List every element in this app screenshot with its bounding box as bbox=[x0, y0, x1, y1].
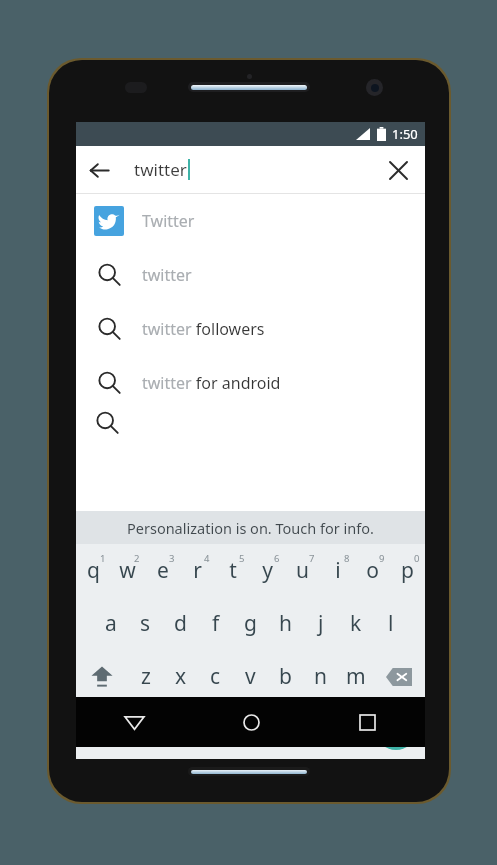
staticText: c bbox=[210, 662, 221, 691]
button[interactable]: c bbox=[198, 650, 233, 703]
staticText: b bbox=[279, 662, 292, 691]
staticText: n bbox=[314, 662, 327, 691]
staticText: 1 bbox=[100, 552, 106, 565]
button[interactable]: b bbox=[268, 650, 303, 703]
staticText: twitter bbox=[134, 158, 187, 181]
button[interactable]: f bbox=[198, 597, 233, 650]
staticText: twitter followers bbox=[142, 318, 265, 340]
staticText: x bbox=[175, 662, 187, 691]
button[interactable]: i bbox=[320, 544, 355, 597]
button[interactable]: Clear search bbox=[375, 147, 421, 193]
staticText: r bbox=[193, 556, 202, 585]
staticText: 1:50 bbox=[392, 125, 418, 143]
button[interactable]: , bbox=[128, 703, 164, 756]
staticText: a bbox=[105, 609, 117, 638]
staticText: h bbox=[279, 609, 292, 638]
button[interactable]: Home bbox=[193, 697, 309, 747]
button[interactable]: . bbox=[331, 703, 367, 756]
button[interactable]: Search bbox=[376, 710, 416, 750]
button[interactable]: Back bbox=[76, 147, 122, 193]
button[interactable]: twitter for android bbox=[76, 356, 425, 410]
staticText: w bbox=[119, 556, 136, 585]
button[interactable]: p bbox=[390, 544, 425, 597]
button[interactable]: Recent apps bbox=[309, 697, 425, 747]
button[interactable]: a bbox=[93, 597, 128, 650]
staticText: o bbox=[366, 556, 379, 585]
staticText: Personalization is on. Touch for info. bbox=[127, 518, 374, 538]
staticText: z bbox=[141, 662, 151, 691]
staticText: 7 bbox=[309, 552, 315, 565]
staticText: y bbox=[262, 556, 273, 585]
staticText: p bbox=[401, 556, 414, 585]
staticText: f bbox=[212, 609, 220, 638]
staticText: g bbox=[244, 609, 257, 638]
button[interactable]: twitter bbox=[76, 248, 425, 302]
staticText: j bbox=[318, 609, 324, 638]
staticText: d bbox=[174, 609, 187, 638]
staticText: 9 bbox=[379, 552, 385, 565]
button[interactable]: n bbox=[303, 650, 338, 703]
button[interactable]: twitter followers bbox=[76, 302, 425, 356]
button[interactable]: t bbox=[215, 544, 250, 597]
button[interactable]: w bbox=[110, 544, 145, 597]
staticText: u bbox=[296, 556, 309, 585]
button[interactable]: d bbox=[163, 597, 198, 650]
staticText: l bbox=[388, 609, 394, 638]
button[interactable]: l bbox=[373, 597, 408, 650]
staticText: i bbox=[335, 556, 341, 585]
button[interactable]: e bbox=[145, 544, 180, 597]
staticText: s bbox=[140, 609, 151, 638]
button[interactable]: Shift bbox=[76, 650, 128, 703]
button[interactable]: g bbox=[233, 597, 268, 650]
staticText: 8 bbox=[344, 552, 350, 565]
staticText: twitter for android bbox=[142, 372, 281, 394]
staticText: 3 bbox=[169, 552, 175, 565]
button[interactable]: m bbox=[338, 650, 373, 703]
staticText: e bbox=[157, 556, 169, 585]
button[interactable]: x bbox=[163, 650, 198, 703]
button[interactable]: Backspace bbox=[373, 650, 425, 703]
button[interactable]: j bbox=[303, 597, 338, 650]
staticText: 5 bbox=[239, 552, 245, 565]
button[interactable]: h bbox=[268, 597, 303, 650]
staticText: 6 bbox=[274, 552, 280, 565]
staticText: 4 bbox=[204, 552, 210, 565]
button[interactable]: z bbox=[128, 650, 163, 703]
staticText: k bbox=[350, 609, 362, 638]
button[interactable]: o bbox=[355, 544, 390, 597]
staticText: t bbox=[229, 556, 237, 585]
staticText: Twitter bbox=[142, 210, 195, 232]
button[interactable]: y bbox=[250, 544, 285, 597]
button[interactable]: Space bbox=[164, 703, 331, 756]
staticText: twitter bbox=[142, 264, 192, 286]
button[interactable]: u bbox=[285, 544, 320, 597]
button[interactable] bbox=[76, 410, 425, 440]
staticText: v bbox=[245, 662, 256, 691]
staticText: , bbox=[143, 717, 149, 743]
button[interactable]: Hide keyboard bbox=[76, 697, 193, 747]
button[interactable]: s bbox=[128, 597, 163, 650]
button[interactable]: ?123 bbox=[76, 703, 128, 756]
button[interactable]: q bbox=[76, 544, 110, 597]
button[interactable]: k bbox=[338, 597, 373, 650]
button[interactable]: Twitter bbox=[76, 194, 425, 248]
button[interactable]: v bbox=[233, 650, 268, 703]
button[interactable]: r bbox=[180, 544, 215, 597]
staticText: 2 bbox=[134, 552, 140, 565]
button[interactable]: Personalization is on. Touch for info. bbox=[76, 511, 425, 544]
staticText: 0 bbox=[414, 552, 420, 565]
staticText: m bbox=[346, 662, 366, 691]
staticText: q bbox=[87, 556, 100, 585]
